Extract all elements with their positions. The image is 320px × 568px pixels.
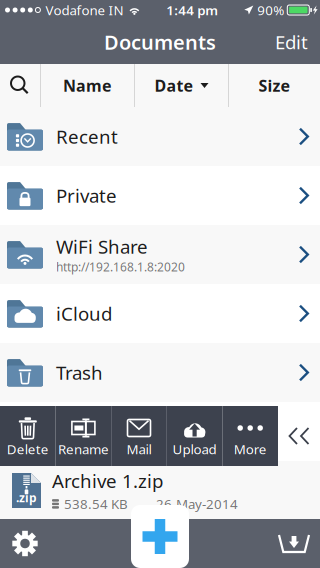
- button[interactable]: WiFi Share: [0, 225, 320, 284]
- button[interactable]: More: [222, 406, 278, 466]
- button[interactable]: Size: [229, 64, 320, 107]
- staticText: iCloud: [56, 301, 112, 326]
- button[interactable]: Edit: [263, 20, 320, 64]
- button[interactable]: Trash: [0, 343, 320, 402]
- staticText: Trash: [56, 360, 103, 385]
- staticText: Vodafone IN: [45, 1, 123, 19]
- button[interactable]: .zip: [0, 461, 320, 520]
- button[interactable]: Name: [41, 64, 134, 107]
- staticText: Rename: [58, 440, 109, 458]
- staticText: Documents: [104, 29, 216, 55]
- staticText: Date: [154, 75, 193, 96]
- button[interactable]: iCloud: [0, 284, 320, 343]
- button[interactable]: Rename: [56, 406, 111, 466]
- button[interactable]: Settings: [0, 519, 52, 568]
- button[interactable]: Add: [131, 505, 189, 568]
- staticText: .zip: [16, 490, 37, 505]
- button[interactable]: Private: [0, 166, 320, 225]
- staticText: 90%: [257, 1, 284, 19]
- staticText: WiFi Share: [56, 234, 148, 259]
- staticText: Delete: [7, 440, 49, 458]
- button[interactable]: Date: [135, 64, 228, 107]
- staticText: 26-May-2014: [156, 495, 238, 513]
- staticText: Archive 1.zip: [52, 468, 163, 493]
- staticText: Private: [56, 183, 117, 208]
- button[interactable]: Collapse toolbar: [278, 406, 320, 466]
- staticText: Recent: [56, 124, 118, 149]
- staticText: Edit: [275, 30, 308, 54]
- staticText: Name: [63, 75, 112, 96]
- staticText: http://192.168.1.8:2020: [56, 259, 185, 275]
- button[interactable]: Upload: [167, 406, 222, 466]
- button[interactable]: Delete: [0, 406, 56, 466]
- button[interactable]: Search: [0, 64, 40, 107]
- staticText: 538.54 KB: [64, 495, 128, 513]
- button[interactable]: Mail: [111, 406, 167, 466]
- button[interactable]: Recent: [0, 107, 320, 166]
- staticText: More: [234, 440, 267, 458]
- staticText: 1:44 pm: [166, 1, 218, 19]
- staticText: Mail: [126, 440, 151, 458]
- staticText: Upload: [173, 440, 217, 458]
- button[interactable]: Downloads: [266, 519, 320, 568]
- staticText: Size: [258, 75, 290, 96]
